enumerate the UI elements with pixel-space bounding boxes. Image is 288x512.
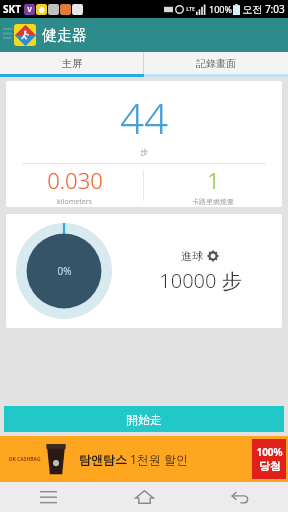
button[interactable]: Goal settings <box>207 250 219 262</box>
staticText: kilometers <box>57 197 92 207</box>
staticText: 1천원 할인 <box>130 451 188 467</box>
button[interactable]: 44 <box>6 81 282 207</box>
staticText: 卡路里燃燒量 <box>192 197 234 206</box>
staticText: 0.030 <box>47 165 103 195</box>
button[interactable]: Menu <box>0 482 96 512</box>
staticText: LTE <box>186 6 195 13</box>
button[interactable]: 1 <box>144 164 282 207</box>
staticText: ● <box>38 6 45 14</box>
button[interactable]: Advertisement <box>0 436 288 482</box>
button[interactable]: 0.030 <box>6 164 143 207</box>
button[interactable]: 主屏 <box>0 52 143 74</box>
staticText: 進球 <box>181 249 203 263</box>
button[interactable]: 記錄畫面 <box>144 52 288 74</box>
staticText: 44 <box>120 89 168 146</box>
staticText: 健走器 <box>42 26 87 45</box>
staticText: SKT <box>3 2 21 16</box>
staticText: 記錄畫面 <box>196 57 236 70</box>
staticText: 100% <box>209 3 232 15</box>
staticText: 0% <box>57 264 72 278</box>
staticText: 당첨 <box>259 459 281 473</box>
button[interactable]: Home <box>96 482 192 512</box>
staticText: 탐앤탐스 <box>79 452 127 467</box>
staticText: 오전 7:03 <box>242 2 285 16</box>
staticText: V <box>27 5 32 15</box>
staticText: 1 <box>207 165 220 195</box>
staticText: 主屏 <box>62 57 82 70</box>
staticText: 步 <box>140 147 148 157</box>
button[interactable]: 0% <box>6 214 282 328</box>
staticText: 開始走 <box>126 412 162 427</box>
staticText: OK CASHBAG <box>8 456 41 463</box>
button[interactable]: Back <box>192 482 288 512</box>
staticText: 10000 步 <box>159 267 242 294</box>
staticText: 100% <box>256 445 283 459</box>
button[interactable]: 開始走 <box>4 406 284 432</box>
